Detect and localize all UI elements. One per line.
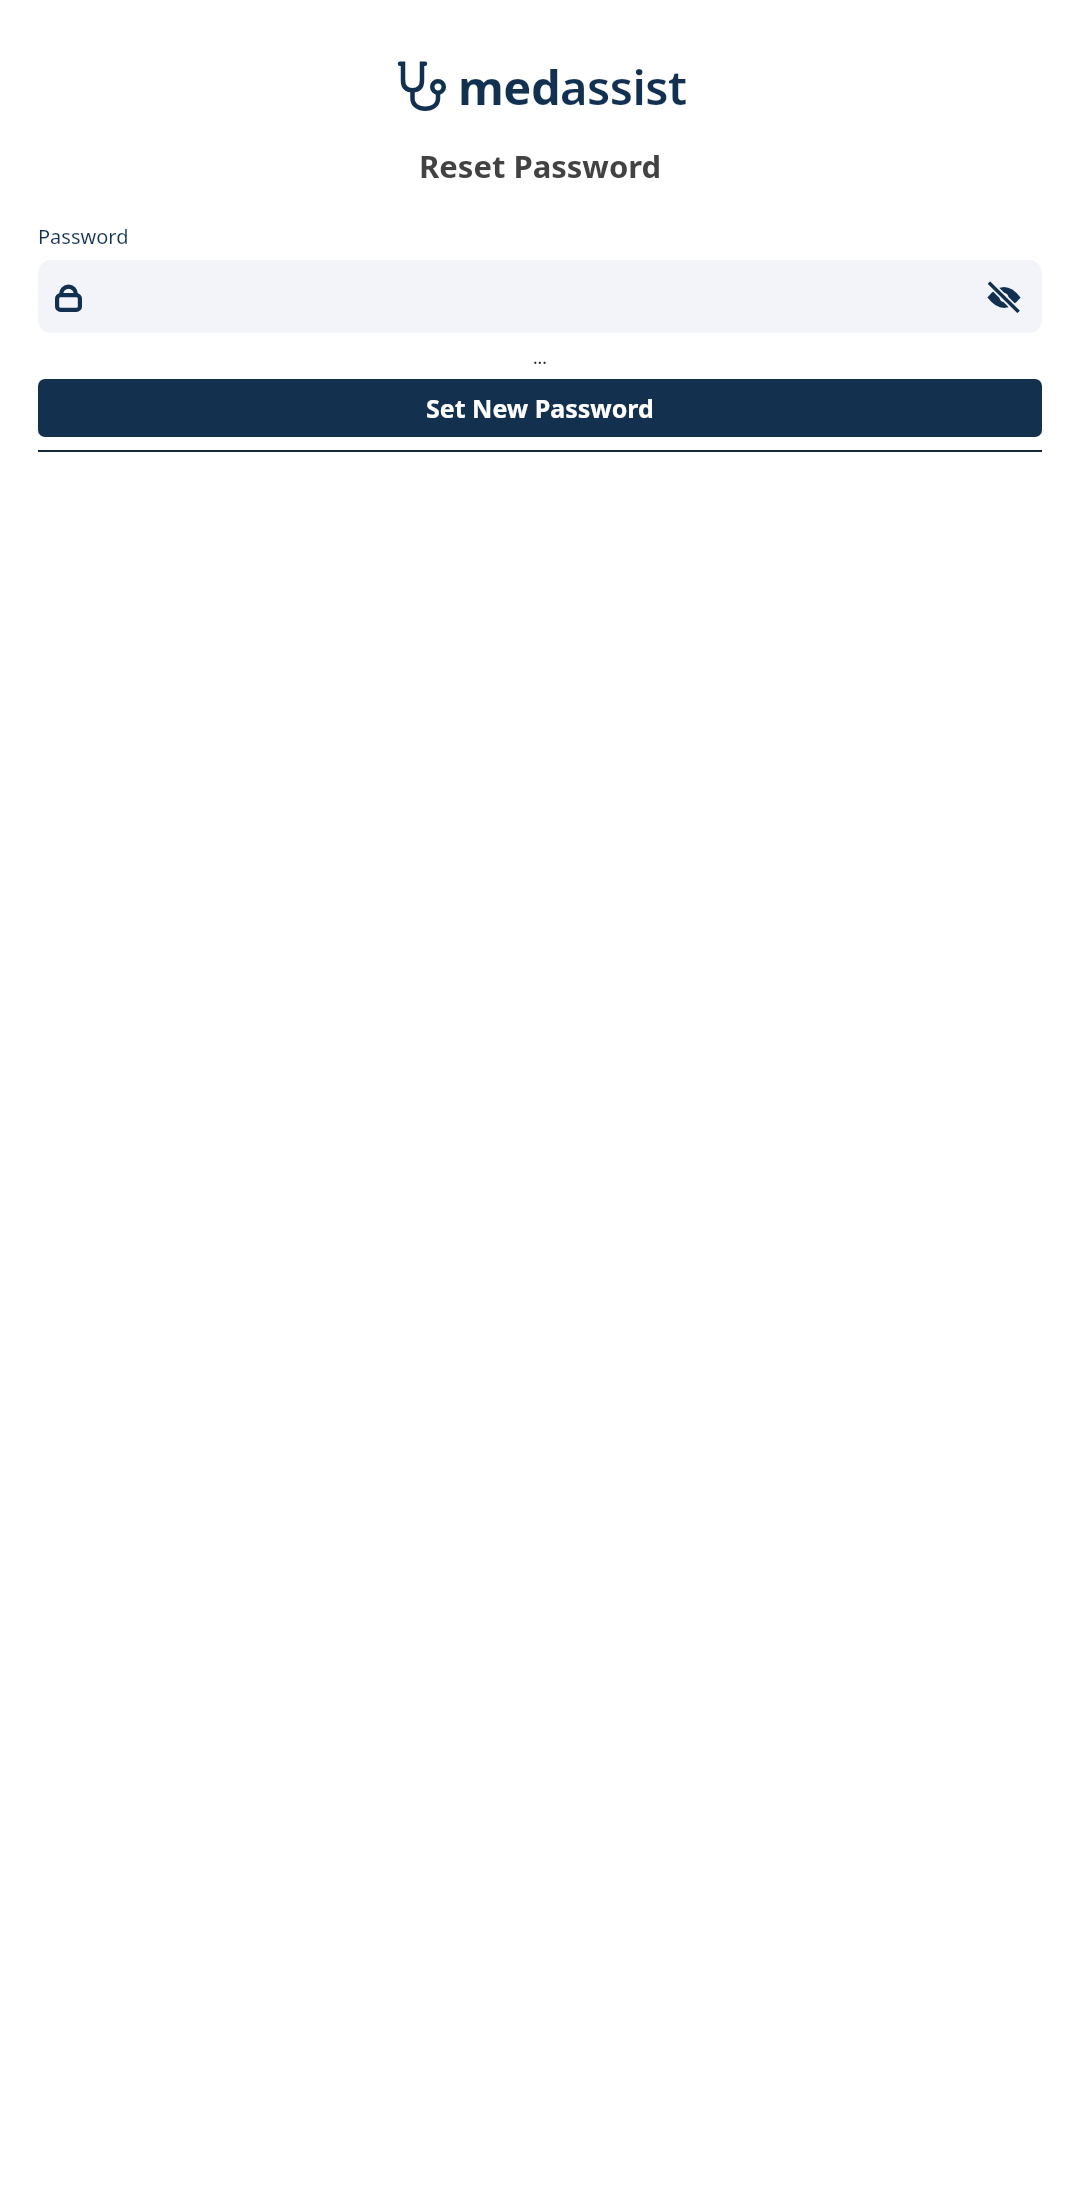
button[interactable]: Set New Password: [38, 379, 1042, 437]
button[interactable]: Show password: [983, 276, 1025, 318]
staticText: Reset Password: [419, 145, 662, 187]
staticText: Set New Password: [426, 391, 654, 425]
staticText: medassist: [458, 55, 687, 119]
staticText: ...: [533, 346, 547, 369]
button[interactable]: Show password: [38, 260, 1042, 333]
staticText: Password: [38, 223, 129, 250]
